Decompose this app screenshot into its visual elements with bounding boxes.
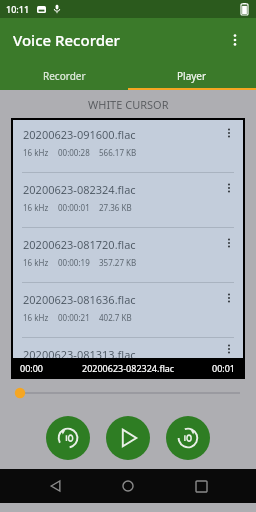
button[interactable]: Seek position (14, 379, 242, 407)
button[interactable]: Play (106, 416, 150, 460)
staticText: 20200623-081720.flac (23, 237, 136, 252)
staticText: 20200623-091600.flac (23, 127, 136, 142)
button[interactable]: Back (39, 469, 73, 503)
button[interactable]: Player (128, 62, 256, 90)
staticText: 16 kHz (23, 202, 49, 213)
staticText: 27.36 KB (99, 202, 132, 213)
button[interactable]: Item options (215, 175, 243, 201)
button[interactable]: 20200623-081636.flac (13, 285, 243, 340)
button[interactable]: Item options (215, 340, 243, 358)
staticText: 20200623-081636.flac (23, 292, 136, 307)
staticText: 16 kHz (23, 257, 49, 268)
staticText: Voice Recorder (13, 30, 120, 50)
staticText: 00:01 (212, 362, 236, 374)
staticText: 00:00 (20, 362, 44, 374)
staticText: 566.17 KB (99, 147, 137, 158)
button[interactable]: Item options (215, 285, 243, 311)
button[interactable]: More options (218, 23, 252, 57)
staticText: 20200623-081313.flac (23, 347, 136, 358)
button[interactable]: 20200623-081720.flac (13, 230, 243, 285)
staticText: 00:00:19 (58, 257, 90, 268)
button[interactable]: Recents (184, 469, 218, 503)
staticText: 00:00:28 (58, 147, 90, 158)
staticText: 357.27 KB (99, 257, 137, 268)
button[interactable]: Forward 10 seconds (166, 416, 210, 460)
button[interactable]: Recorder (0, 62, 128, 90)
button[interactable]: Item options (215, 120, 243, 146)
button[interactable]: 20200623-082324.flac (13, 175, 243, 230)
button[interactable]: Item options (215, 230, 243, 256)
button[interactable]: 20200623-081313.flac (13, 340, 243, 358)
staticText: 20200623-082324.flac (23, 182, 136, 197)
button[interactable]: 20200623-091600.flac (13, 120, 243, 175)
staticText: WHITE CURSOR (88, 97, 169, 112)
staticText: 00:00:01 (58, 202, 90, 213)
staticText: Recorder (43, 69, 86, 83)
staticText: 10:11 (6, 3, 30, 15)
staticText: Player (177, 69, 207, 83)
staticText: 16 kHz (23, 312, 49, 323)
staticText: 00:00:21 (58, 312, 90, 323)
staticText: 402.7 KB (99, 312, 132, 323)
staticText: 16 kHz (23, 147, 49, 158)
button[interactable]: Rewind 10 seconds (46, 416, 90, 460)
button[interactable]: Home (111, 469, 145, 503)
staticText: 20200623-082324.flac (82, 362, 175, 374)
